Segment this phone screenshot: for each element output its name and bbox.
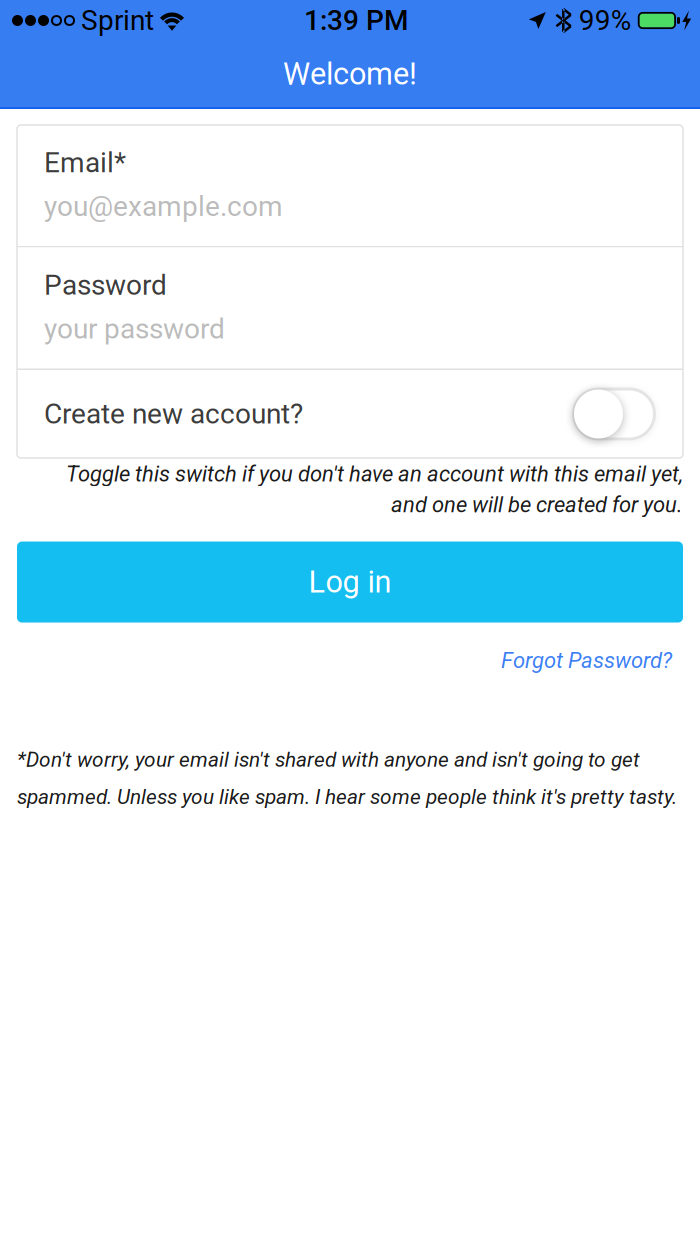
staticText: 99% (579, 4, 632, 37)
staticText: and one will be created for you. (391, 492, 683, 518)
button[interactable]: Create new account (572, 387, 656, 440)
staticText: Email* (44, 146, 126, 179)
staticText: spammed. Unless you like spam. I hear so… (17, 785, 677, 809)
staticText: Welcome! (283, 56, 417, 92)
button[interactable]: Forgot Password? (0, 623, 700, 681)
staticText: Toggle this switch if you don't have an … (66, 461, 683, 487)
staticText: Log in (308, 564, 391, 600)
staticText: you@example.com (44, 190, 283, 223)
staticText: your password (44, 312, 225, 345)
staticText: 1:39 PM (304, 4, 408, 37)
staticText: Sprint (81, 4, 154, 37)
button[interactable]: Log in (17, 542, 683, 623)
staticText: Password (44, 269, 167, 301)
button[interactable]: Email* (17, 125, 683, 246)
button[interactable]: Create new account? (17, 370, 683, 458)
staticText: Create new account? (44, 398, 303, 430)
staticText: *Don't worry, your email isn't shared wi… (17, 747, 640, 772)
staticText: Forgot Password? (501, 648, 672, 673)
button[interactable]: Password (17, 247, 683, 368)
